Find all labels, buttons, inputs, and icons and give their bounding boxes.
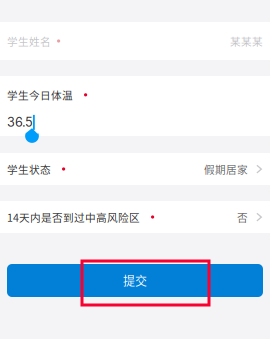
button[interactable]: 提交 — [7, 264, 263, 297]
button[interactable]: 学生姓名 — [0, 22, 270, 60]
staticText: 提交 — [123, 272, 147, 289]
button[interactable]: 学生状态 — [0, 153, 270, 185]
staticText: 否 — [237, 209, 248, 225]
staticText: 某某某 — [230, 33, 263, 49]
staticText: 学生状态 — [7, 161, 51, 177]
staticText: 36.5 — [7, 115, 33, 130]
staticText: 学生姓名 — [7, 33, 51, 49]
button[interactable]: 14天内是否到过中高风险区 — [0, 201, 270, 233]
staticText: 假期居家 — [204, 161, 248, 177]
staticText: 14天内是否到过中高风险区 — [7, 209, 140, 225]
staticText: 学生今日体温 — [7, 87, 73, 102]
